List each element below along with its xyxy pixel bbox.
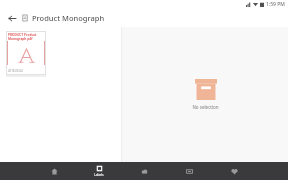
button[interactable]: Inbox	[175, 162, 203, 180]
staticText: 1:59 PM	[266, 1, 285, 8]
button[interactable]: Labels	[85, 162, 113, 180]
button[interactable]: Favorites	[220, 162, 248, 180]
staticText: Labels	[94, 173, 104, 177]
staticText: PRODUCT Product Monograph pdf	[8, 33, 37, 41]
button[interactable]: PRODUCT Product Monograph pdf	[6, 31, 46, 77]
button[interactable]: Back	[5, 11, 19, 25]
button[interactable]: Cloud	[130, 162, 158, 180]
staticText: Product Monograph	[32, 13, 105, 23]
staticText: 2018-05-04	[8, 69, 23, 73]
staticText: No selection	[192, 104, 219, 110]
button[interactable]: Home	[40, 162, 68, 180]
